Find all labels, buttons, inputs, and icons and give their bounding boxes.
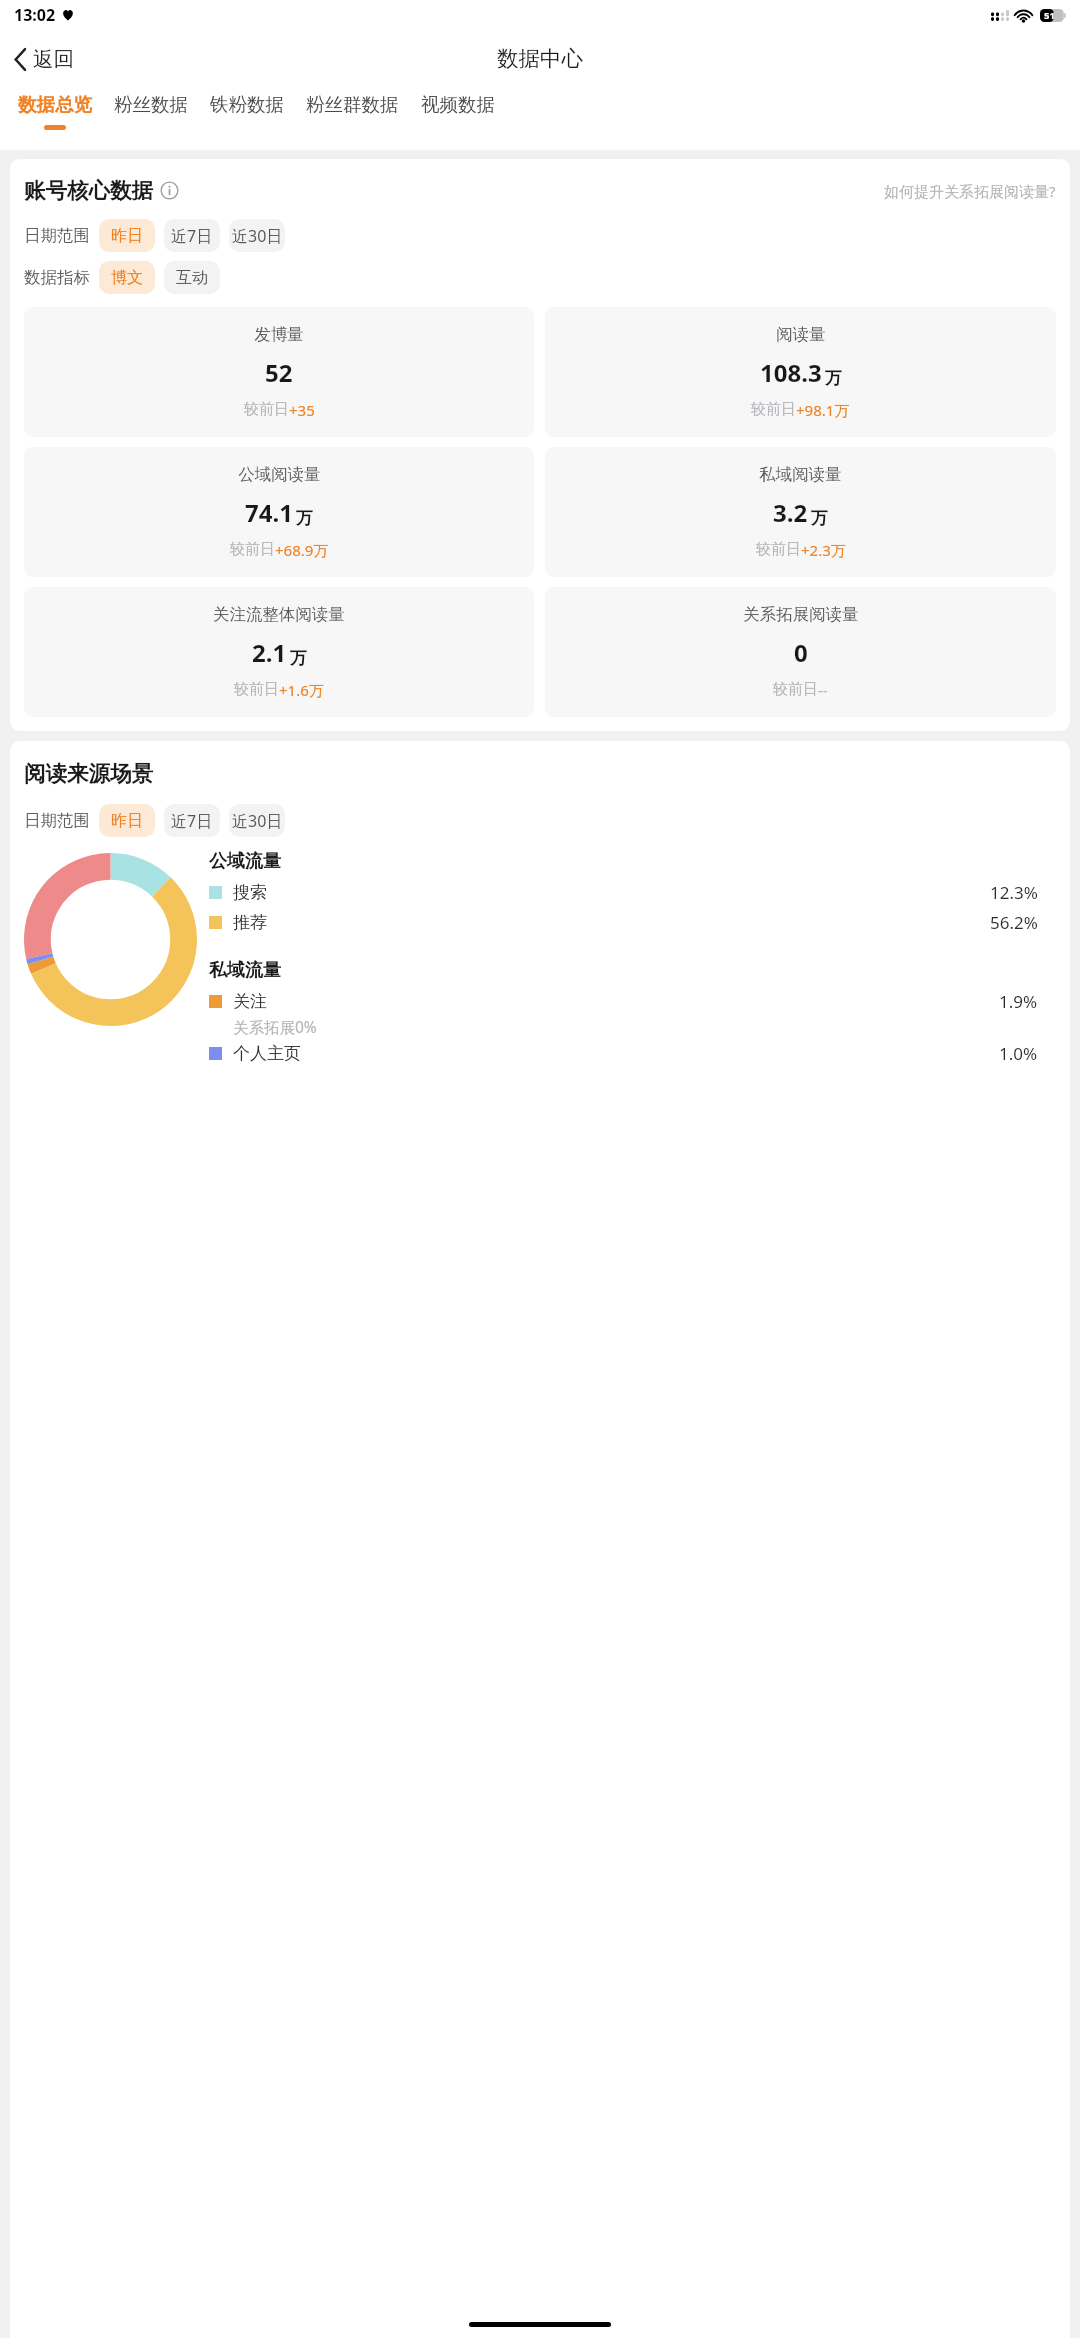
staticText: 较前日 bbox=[773, 680, 818, 699]
button[interactable]: 私域阅读量 bbox=[545, 447, 1056, 577]
button[interactable]: 如何提升关系拓展阅读量? bbox=[884, 181, 1056, 201]
staticText: 发博量 bbox=[254, 324, 304, 345]
staticText: 近7日 bbox=[171, 810, 213, 832]
staticText: 1.0% bbox=[999, 1042, 1038, 1065]
staticText: 阅读量 bbox=[776, 324, 826, 345]
staticText: 推荐 bbox=[233, 912, 267, 933]
button[interactable]: 近30日 bbox=[229, 219, 285, 252]
staticText: 56.2% bbox=[990, 911, 1038, 934]
button[interactable]: 搜索 bbox=[209, 881, 1056, 904]
staticText: 较前日 bbox=[751, 400, 796, 419]
button[interactable]: 关注 bbox=[209, 990, 1056, 1013]
button[interactable]: 视频数据 bbox=[410, 87, 506, 125]
staticText: 13:02 bbox=[14, 4, 56, 26]
button[interactable]: 返回 bbox=[9, 39, 79, 79]
staticText: +2.3万 bbox=[801, 540, 846, 560]
staticText: 0 bbox=[794, 636, 808, 669]
staticText: 日期范围 bbox=[24, 225, 90, 246]
staticText: 较前日 bbox=[230, 540, 275, 559]
button[interactable]: 互动 bbox=[164, 261, 220, 294]
staticText: 搜索 bbox=[233, 882, 267, 903]
staticText: 公域阅读量 bbox=[238, 464, 321, 485]
staticText: 较前日 bbox=[756, 540, 801, 559]
staticText: 万 bbox=[825, 368, 842, 389]
button[interactable]: 昨日 bbox=[99, 804, 155, 837]
button[interactable]: 粉丝群数据 bbox=[295, 87, 410, 125]
staticText: 数据指标 bbox=[24, 267, 90, 288]
button[interactable]: 博文 bbox=[99, 261, 155, 294]
button[interactable]: 推荐 bbox=[209, 911, 1056, 934]
button[interactable]: 数据总览 bbox=[7, 87, 103, 130]
staticText: 互动 bbox=[176, 268, 208, 288]
button[interactable]: 个人主页 bbox=[209, 1042, 1056, 1065]
button[interactable]: 阅读量 bbox=[545, 307, 1056, 437]
staticText: 万 bbox=[811, 508, 828, 529]
staticText: 较前日 bbox=[244, 400, 289, 419]
staticText: 昨日 bbox=[111, 811, 143, 831]
staticText: 近30日 bbox=[232, 810, 283, 832]
staticText: 关注流整体阅读量 bbox=[213, 604, 345, 625]
button[interactable]: 关注流整体阅读量 bbox=[24, 587, 534, 717]
staticText: 视频数据 bbox=[421, 93, 495, 116]
staticText: 12.3% bbox=[990, 881, 1038, 904]
staticText: 关注 bbox=[233, 991, 267, 1012]
staticText: +68.9万 bbox=[275, 540, 329, 560]
staticText: 3.2 bbox=[773, 496, 808, 529]
staticText: 52 bbox=[265, 356, 293, 389]
staticText: 74.1 bbox=[245, 496, 293, 529]
staticText: 如何提升关系拓展阅读量? bbox=[884, 181, 1056, 201]
staticText: 万 bbox=[296, 508, 313, 529]
button[interactable]: 铁粉数据 bbox=[199, 87, 295, 125]
button[interactable]: 粉丝数据 bbox=[103, 87, 199, 125]
button[interactable]: 近7日 bbox=[164, 804, 220, 837]
button[interactable]: 公域阅读量 bbox=[24, 447, 534, 577]
staticText: 1.9% bbox=[999, 990, 1038, 1013]
staticText: 阅读来源场景 bbox=[24, 760, 153, 787]
staticText: +98.1万 bbox=[796, 400, 850, 420]
staticText: 昨日 bbox=[111, 226, 143, 246]
staticText: 铁粉数据 bbox=[210, 93, 284, 116]
staticText: 日期范围 bbox=[24, 810, 90, 831]
staticText: 数据总览 bbox=[18, 93, 92, 116]
staticText: 108.3 bbox=[760, 356, 822, 389]
staticText: 私域流量 bbox=[209, 959, 281, 982]
staticText: +35 bbox=[289, 400, 315, 420]
staticText: 51 bbox=[1044, 9, 1055, 22]
staticText: 粉丝群数据 bbox=[306, 93, 399, 116]
staticText: 2.1 bbox=[252, 636, 287, 669]
button[interactable]: 关系拓展阅读量 bbox=[545, 587, 1056, 717]
staticText: 公域流量 bbox=[209, 850, 281, 873]
staticText: 博文 bbox=[111, 268, 143, 288]
button[interactable]: 发博量 bbox=[24, 307, 534, 437]
staticText: 粉丝数据 bbox=[114, 93, 188, 116]
button[interactable]: 昨日 bbox=[99, 219, 155, 252]
staticText: +1.6万 bbox=[279, 680, 324, 700]
staticText: 较前日 bbox=[234, 680, 279, 699]
staticText: 关系拓展阅读量 bbox=[743, 604, 859, 625]
staticText: 万 bbox=[290, 648, 307, 669]
button[interactable]: 近30日 bbox=[229, 804, 285, 837]
staticText: 数据中心 bbox=[497, 45, 583, 72]
staticText: 私域阅读量 bbox=[759, 464, 842, 485]
staticText: 近7日 bbox=[171, 225, 213, 247]
staticText: 账号核心数据 bbox=[24, 177, 153, 204]
staticText: -- bbox=[818, 680, 828, 700]
staticText: 返回 bbox=[33, 46, 74, 72]
staticText: 近30日 bbox=[232, 225, 283, 247]
button[interactable]: 近7日 bbox=[164, 219, 220, 252]
staticText: 关系拓展0% bbox=[233, 1016, 317, 1037]
staticText: 个人主页 bbox=[233, 1043, 301, 1064]
button[interactable]: 说明 bbox=[160, 181, 179, 200]
